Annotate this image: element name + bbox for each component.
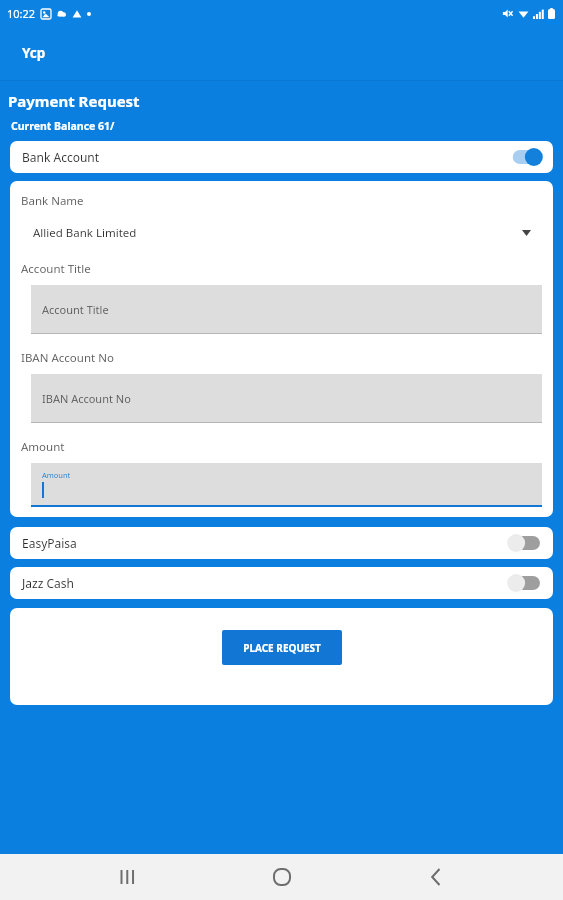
staticText: Bank Name: [21, 193, 84, 209]
staticText: Account Title: [21, 261, 91, 277]
staticText: PLACE REQUEST: [243, 641, 321, 655]
button[interactable]: EasyPaisa: [10, 527, 553, 559]
staticText: Amount: [42, 470, 71, 480]
button[interactable]: Amount: [31, 463, 542, 507]
button[interactable]: PLACE REQUEST: [222, 630, 342, 665]
button[interactable]: Back: [408, 854, 464, 900]
button[interactable]: IBAN Account No: [31, 374, 542, 423]
button[interactable]: Jazz Cash: [10, 567, 553, 599]
staticText: EasyPaisa: [22, 535, 77, 551]
button[interactable]: Bank Account: [10, 141, 553, 173]
staticText: Amount: [21, 439, 65, 455]
staticText: Current Balance 61/: [11, 119, 115, 133]
button[interactable]: Account Title: [31, 285, 542, 334]
staticText: Ycp: [22, 44, 46, 62]
button[interactable]: Recent apps: [99, 854, 155, 900]
staticText: IBAN Account No: [42, 391, 131, 406]
staticText: Account Title: [42, 302, 109, 317]
staticText: Allied Bank Limited: [33, 225, 137, 241]
button[interactable]: Home: [254, 854, 310, 900]
staticText: IBAN Account No: [21, 350, 114, 366]
staticText: 10:22: [7, 6, 36, 21]
button[interactable]: Allied Bank Limited: [21, 222, 543, 244]
staticText: Payment Request: [8, 91, 140, 111]
staticText: Bank Account: [22, 149, 100, 165]
staticText: Jazz Cash: [22, 575, 74, 591]
